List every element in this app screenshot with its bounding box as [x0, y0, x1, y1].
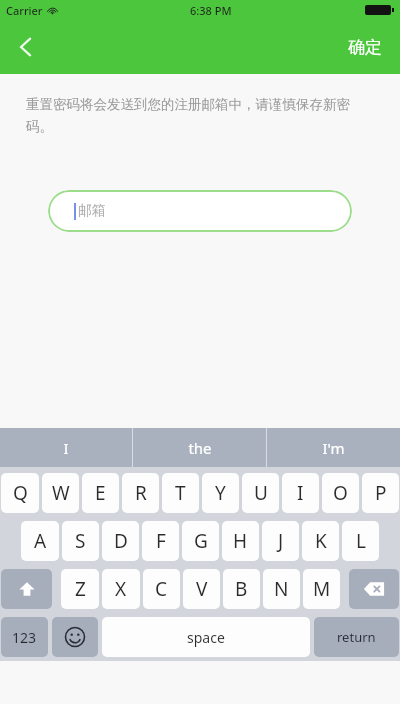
staticText: J [278, 528, 284, 554]
button[interactable]: 确定 [330, 27, 400, 68]
staticText: O [333, 480, 348, 506]
button[interactable]: G [182, 521, 219, 561]
button[interactable]: J [262, 521, 299, 561]
staticText: W [52, 480, 70, 506]
staticText: Y [215, 480, 226, 506]
button[interactable]: W [42, 473, 79, 513]
staticText: H [233, 528, 248, 554]
button[interactable]: H [222, 521, 259, 561]
button[interactable]: X [102, 569, 140, 609]
button[interactable]: Backspace [349, 569, 399, 609]
button[interactable]: I [0, 428, 132, 467]
button[interactable]: 邮箱 [48, 190, 352, 232]
button[interactable]: P [362, 473, 399, 513]
staticText: 6:38 PM [190, 3, 232, 18]
staticText: G [194, 528, 208, 554]
staticText: Q [13, 480, 28, 506]
staticText: A [34, 528, 47, 554]
button[interactable]: M [303, 569, 340, 609]
staticText: K [315, 528, 327, 554]
staticText: 邮箱 [78, 202, 106, 220]
button[interactable]: S [62, 521, 99, 561]
staticText: R [135, 480, 147, 506]
button[interactable]: E [82, 473, 119, 513]
staticText: C [155, 576, 168, 602]
staticText: N [274, 576, 289, 602]
staticText: 重置密码将会发送到您的注册邮箱中，请谨慎保存新密码。 [26, 96, 374, 135]
staticText: I [297, 480, 304, 506]
staticText: T [175, 480, 186, 506]
staticText: return [337, 628, 376, 646]
button[interactable]: I [282, 473, 319, 513]
button[interactable]: O [322, 473, 359, 513]
staticText: S [75, 528, 86, 554]
button[interactable]: Back [0, 21, 52, 73]
staticText: F [156, 528, 166, 554]
staticText: 123 [12, 628, 37, 647]
button[interactable]: B [223, 569, 260, 609]
button[interactable]: T [162, 473, 199, 513]
button[interactable]: D [102, 521, 139, 561]
button[interactable]: C [143, 569, 180, 609]
button[interactable]: N [263, 569, 300, 609]
staticText: U [254, 480, 268, 506]
button[interactable]: V [183, 569, 220, 609]
button[interactable]: the [133, 428, 266, 467]
button[interactable]: Z [61, 569, 99, 609]
button[interactable]: Q [1, 473, 39, 513]
staticText: space [187, 628, 225, 647]
staticText: 确定 [348, 37, 382, 58]
button[interactable]: U [242, 473, 279, 513]
staticText: P [375, 480, 387, 506]
staticText: I [63, 438, 69, 458]
button[interactable]: Shift [1, 569, 52, 609]
button[interactable]: F [142, 521, 179, 561]
button[interactable]: I'm [267, 428, 400, 467]
staticText: D [114, 528, 128, 554]
staticText: L [356, 528, 366, 554]
staticText: B [235, 576, 248, 602]
staticText: E [95, 480, 106, 506]
button[interactable]: K [302, 521, 339, 561]
staticText: X [115, 576, 127, 602]
button[interactable]: Y [202, 473, 239, 513]
button[interactable]: L [342, 521, 379, 561]
staticText: V [196, 576, 208, 602]
button[interactable]: A [21, 521, 59, 561]
button[interactable]: R [122, 473, 159, 513]
button[interactable]: space [102, 617, 310, 657]
button[interactable]: return [314, 617, 399, 657]
staticText: M [313, 576, 331, 602]
staticText: Carrier [6, 3, 43, 18]
staticText: the [188, 438, 212, 458]
staticText: I'm [322, 438, 345, 458]
button[interactable]: 123 [1, 617, 48, 657]
button[interactable]: Emoji [52, 617, 98, 657]
staticText: Z [75, 576, 86, 602]
